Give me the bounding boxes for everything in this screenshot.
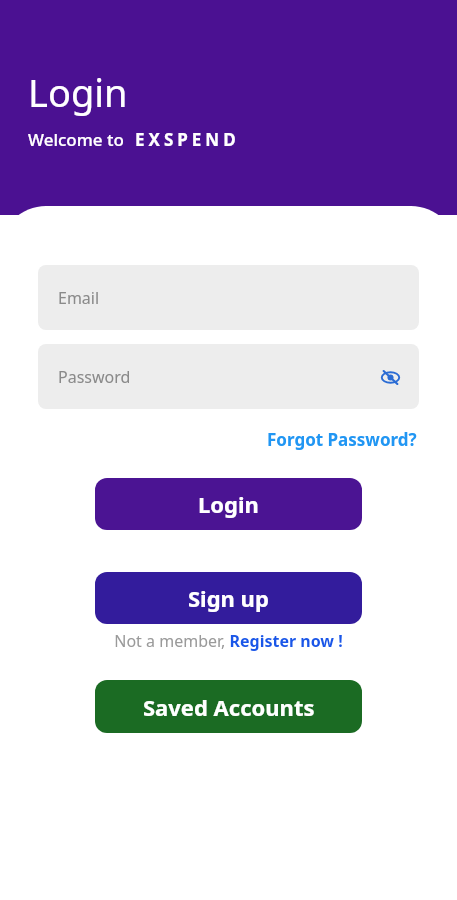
staticText: Login: [198, 489, 259, 519]
staticText: Forgot Password?: [267, 428, 417, 451]
button[interactable]: Saved Accounts: [95, 680, 362, 733]
staticText: Email: [58, 287, 100, 309]
staticText: EXSPEND: [135, 128, 240, 151]
button[interactable]: Forgot Password?: [265, 425, 419, 454]
button[interactable]: Show password: [377, 364, 403, 390]
staticText: Not a member, Register now !: [114, 630, 343, 652]
button[interactable]: Sign up: [95, 572, 362, 624]
staticText: Saved Accounts: [143, 692, 315, 722]
staticText: Welcome to: [28, 128, 124, 151]
button[interactable]: Password: [38, 344, 419, 409]
button[interactable]: Email: [38, 265, 419, 330]
staticText: Login: [28, 66, 128, 118]
button[interactable]: Login: [95, 478, 362, 530]
staticText: Password: [58, 366, 131, 388]
staticText: Sign up: [188, 583, 269, 613]
button[interactable]: Not a member, Register now !: [108, 628, 349, 654]
